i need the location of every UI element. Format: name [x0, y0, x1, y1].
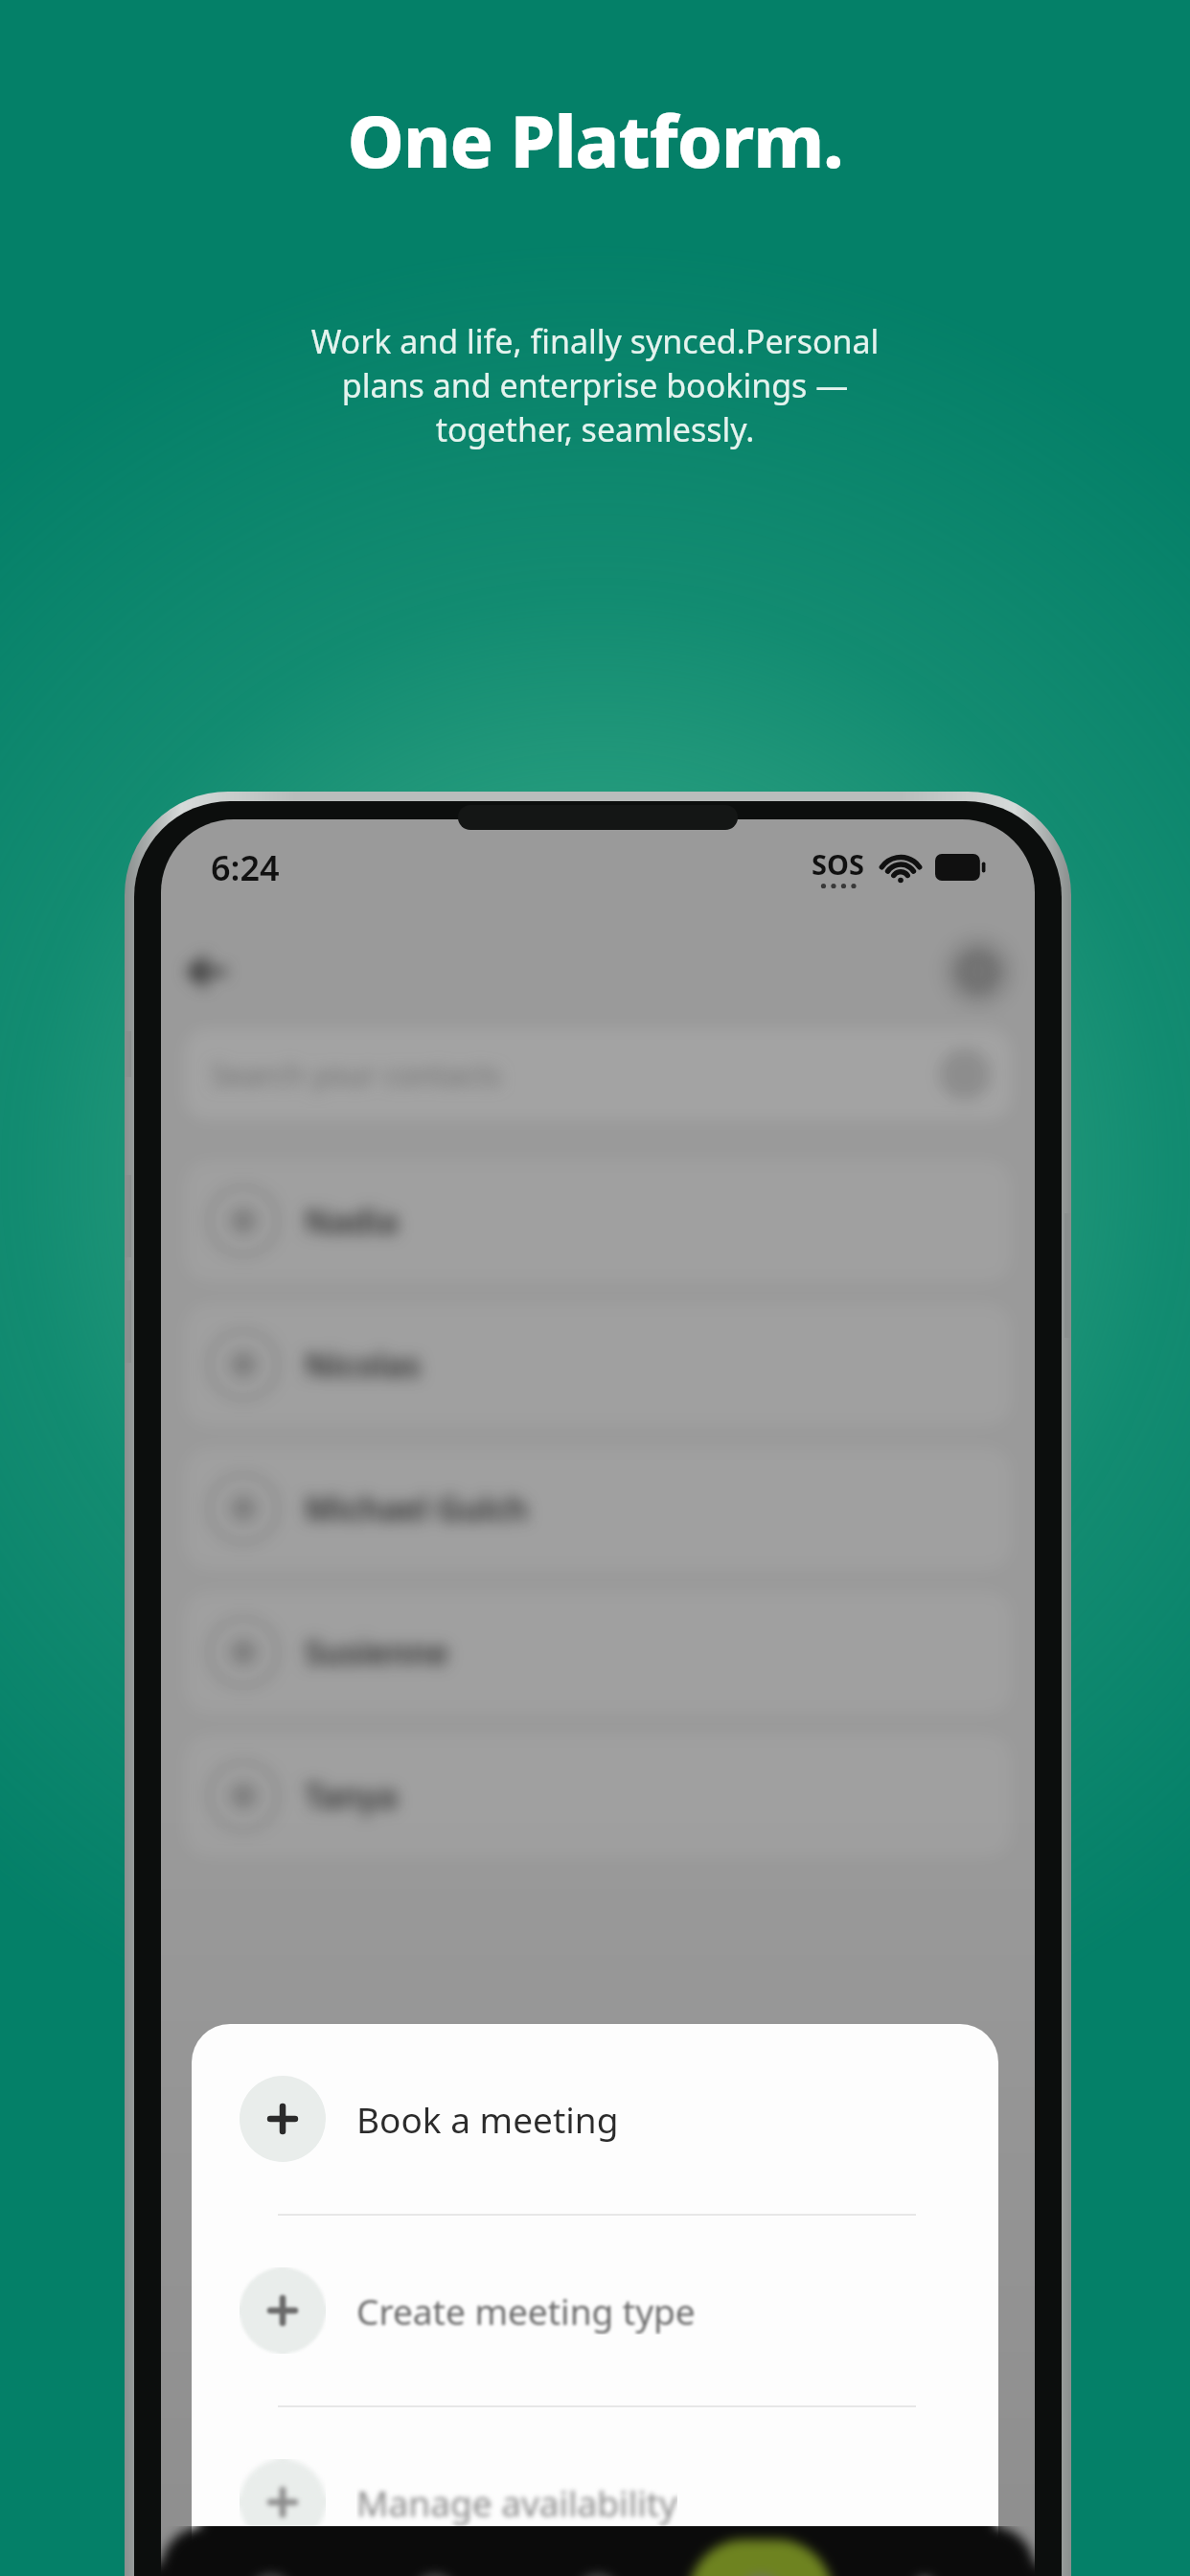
button[interactable]: Book a meeting — [192, 2024, 998, 2214]
staticText: Create meeting type — [356, 2287, 696, 2334]
staticText: SOS — [812, 845, 864, 883]
staticText: Susienne — [305, 1630, 448, 1674]
staticText: Nicolas — [305, 1343, 421, 1387]
staticText: One Platform. — [0, 91, 1190, 189]
button[interactable]: Calendar — [363, 2540, 507, 2576]
button[interactable]: Create meeting type — [192, 2216, 998, 2405]
staticText: Search your contacts — [211, 1054, 502, 1094]
button[interactable]: Manage availability — [192, 2407, 998, 2576]
button[interactable]: Home — [199, 2540, 343, 2576]
staticText: Nadia — [305, 1199, 399, 1243]
staticText: Michael Gulch — [305, 1486, 528, 1530]
button[interactable]: Bookings — [526, 2540, 670, 2576]
staticText: Book a meeting — [356, 2095, 619, 2143]
staticText: Manage availability — [356, 2478, 677, 2526]
staticText: 6:24 — [211, 844, 280, 891]
staticText: Tanya — [305, 1774, 398, 1818]
staticText: Work and life, finally synced.Personal p… — [105, 319, 1085, 451]
button[interactable]: Add — [689, 2540, 833, 2576]
